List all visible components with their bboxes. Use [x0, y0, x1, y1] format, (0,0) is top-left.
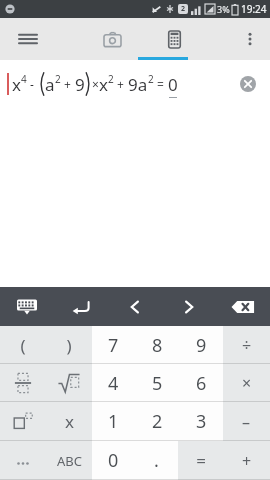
button[interactable]: 7	[92, 326, 135, 364]
button[interactable]: Backspace	[216, 287, 270, 326]
staticText: )	[66, 334, 72, 357]
staticText: .	[154, 448, 159, 473]
staticText: 6	[196, 371, 207, 396]
staticText: a	[45, 73, 55, 96]
staticText: 5	[152, 371, 163, 396]
staticText: =	[196, 449, 206, 472]
button[interactable]: =	[178, 441, 223, 480]
button[interactable]: Camera	[84, 18, 140, 60]
staticText: 1	[108, 409, 119, 434]
button[interactable]: 9	[179, 326, 223, 364]
staticText: 2	[152, 409, 163, 434]
staticText: -	[27, 76, 38, 92]
staticText: +	[242, 450, 252, 472]
staticText: 9	[75, 73, 85, 96]
staticText: 0	[168, 73, 178, 96]
staticText: 9	[196, 333, 207, 358]
button[interactable]: 4	[92, 364, 135, 402]
staticText: 7	[108, 333, 119, 358]
staticText: ÷	[242, 334, 252, 356]
staticText: 4	[21, 72, 27, 86]
button[interactable]: Previous	[108, 287, 162, 326]
button[interactable]: +	[223, 441, 270, 480]
staticText: (	[20, 334, 26, 357]
button[interactable]: 2	[135, 402, 179, 441]
staticText: 19:24	[241, 2, 267, 16]
staticText: 8	[152, 333, 163, 358]
button[interactable]: 8	[135, 326, 179, 364]
staticText: –	[242, 411, 251, 433]
staticText: ABC	[57, 452, 82, 470]
staticText: =	[154, 76, 168, 92]
staticText: 2	[148, 72, 154, 86]
staticText: 0	[108, 448, 119, 473]
button[interactable]: )	[46, 326, 92, 364]
button[interactable]: –	[223, 402, 270, 441]
button[interactable]: 6	[179, 364, 223, 402]
button[interactable]: Calculator	[146, 18, 202, 60]
button[interactable]: Square root	[46, 364, 92, 402]
button[interactable]: ×	[223, 364, 270, 402]
button[interactable]: 0	[92, 441, 135, 480]
staticText: ×	[242, 372, 252, 394]
button[interactable]: ABC	[46, 441, 92, 480]
button[interactable]: Next	[162, 287, 216, 326]
button[interactable]: More	[0, 441, 46, 480]
button[interactable]: .	[135, 441, 178, 480]
button[interactable]: ÷	[223, 326, 270, 364]
staticText: +	[114, 76, 128, 92]
button[interactable]: Power	[0, 402, 46, 441]
staticText: x	[65, 410, 74, 433]
button[interactable]: (	[0, 326, 46, 364]
staticText: 3	[196, 409, 207, 434]
staticText: x	[12, 73, 21, 96]
staticText: 4	[108, 371, 119, 396]
button[interactable]: x	[46, 402, 92, 441]
staticText: x	[99, 73, 108, 96]
button[interactable]: Clear	[236, 72, 260, 96]
staticText: +	[61, 76, 75, 92]
button[interactable]: Enter	[54, 287, 108, 326]
staticText: 2	[181, 4, 186, 14]
staticText: 2	[55, 72, 61, 86]
button[interactable]: 1	[92, 402, 135, 441]
staticText: 3%	[217, 3, 230, 15]
staticText: 9a	[128, 73, 148, 96]
button[interactable]: 3	[179, 402, 223, 441]
button[interactable]: 5	[135, 364, 179, 402]
button[interactable]: More options	[230, 18, 270, 60]
staticText: ×	[92, 76, 99, 92]
button[interactable]: Fraction	[0, 364, 46, 402]
button[interactable]: Menu	[0, 18, 56, 60]
staticText: 2	[108, 72, 114, 86]
button[interactable]: Keyboard	[0, 287, 54, 326]
